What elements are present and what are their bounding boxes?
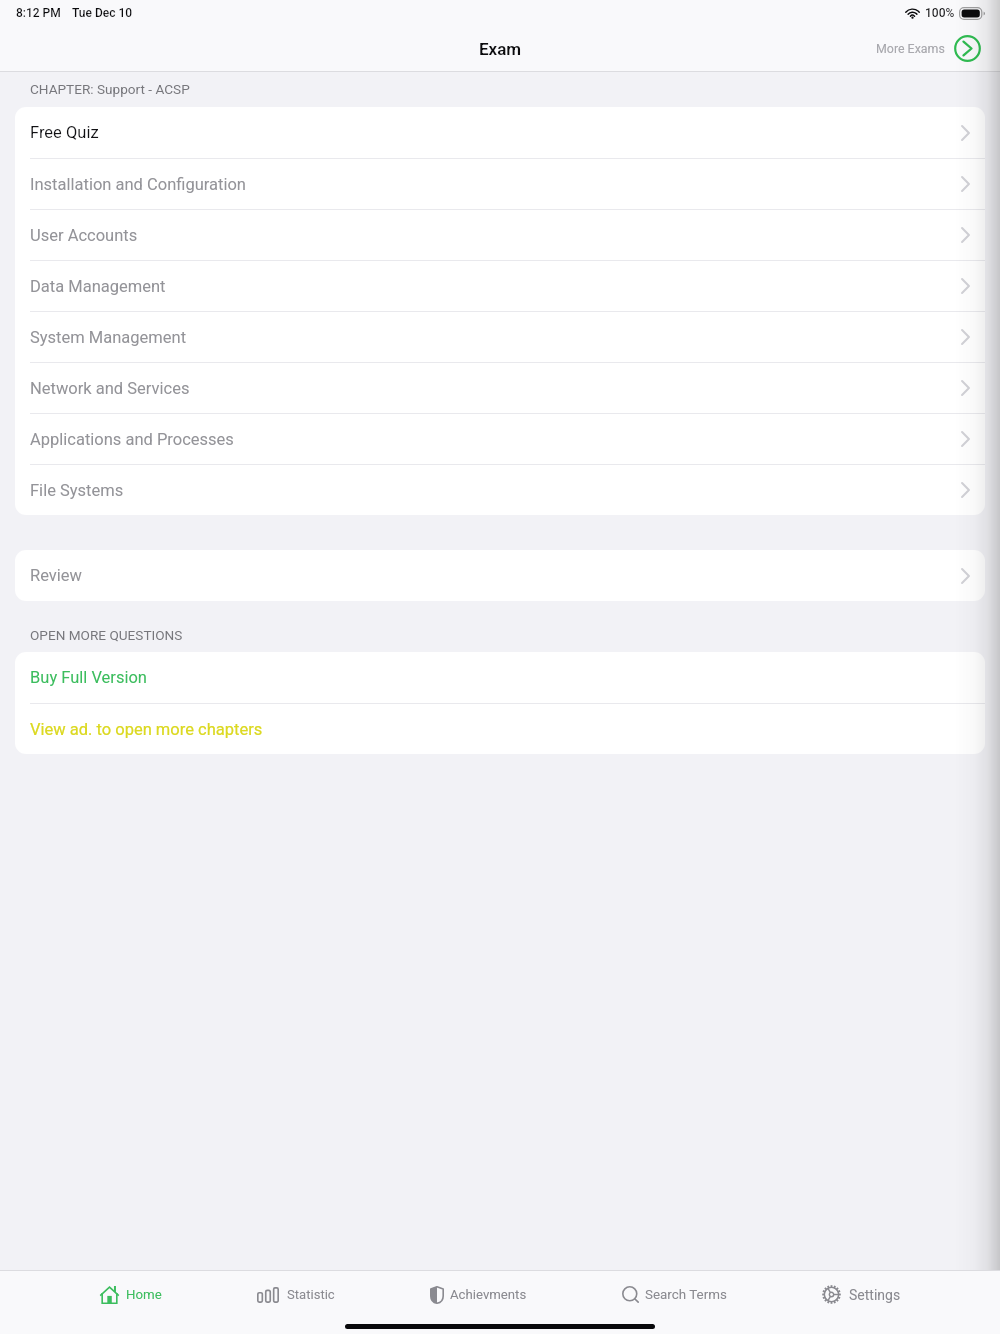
staticText: Installation and Configuration xyxy=(30,175,246,194)
button[interactable]: Applications and Processes xyxy=(15,414,985,464)
button[interactable]: File Systems xyxy=(15,465,985,515)
button[interactable]: Data Management xyxy=(15,261,985,311)
staticText: Home xyxy=(126,1287,162,1303)
button[interactable]: Achievments xyxy=(407,1271,550,1318)
staticText: File Systems xyxy=(30,481,124,500)
staticText: View ad. to open more chapters xyxy=(30,720,263,739)
button[interactable]: Installation and Configuration xyxy=(15,159,985,209)
button[interactable]: More Exams xyxy=(868,31,985,66)
staticText: Achievments xyxy=(450,1287,527,1302)
staticText: CHAPTER: Support - ACSP xyxy=(30,81,190,97)
staticText: Review xyxy=(30,566,82,585)
staticText: User Accounts xyxy=(30,226,138,245)
button[interactable]: System Management xyxy=(15,312,985,362)
staticText: Free Quiz xyxy=(30,123,99,142)
staticText: Applications and Processes xyxy=(30,430,234,449)
other: Wi-Fi xyxy=(905,7,920,19)
staticText: 8:12 PM xyxy=(16,6,61,20)
other: Battery full xyxy=(959,7,985,20)
staticText: System Management xyxy=(30,328,187,347)
button[interactable]: Network and Services xyxy=(15,363,985,413)
button[interactable]: Review xyxy=(15,550,985,601)
staticText: 100% xyxy=(925,6,955,20)
staticText: More Exams xyxy=(876,41,945,56)
button[interactable]: Statistic xyxy=(234,1271,358,1318)
staticText: Search Terms xyxy=(645,1287,727,1303)
button[interactable]: User Accounts xyxy=(15,210,985,260)
staticText: Exam xyxy=(479,39,522,59)
button[interactable]: Home xyxy=(77,1271,185,1318)
button[interactable]: Search Terms xyxy=(599,1271,750,1318)
button[interactable]: Buy Full Version xyxy=(15,652,985,703)
staticText: Settings xyxy=(849,1287,901,1303)
button[interactable]: Free Quiz xyxy=(15,107,985,158)
staticText: Statistic xyxy=(287,1287,335,1302)
staticText: Tue Dec 10 xyxy=(72,6,133,20)
staticText: Buy Full Version xyxy=(30,668,147,687)
button[interactable]: Settings xyxy=(799,1271,924,1318)
button[interactable]: View ad. to open more chapters xyxy=(15,704,985,754)
staticText: Network and Services xyxy=(30,379,190,398)
staticText: Data Management xyxy=(30,277,166,296)
staticText: OPEN MORE QUESTIONS xyxy=(30,627,183,643)
